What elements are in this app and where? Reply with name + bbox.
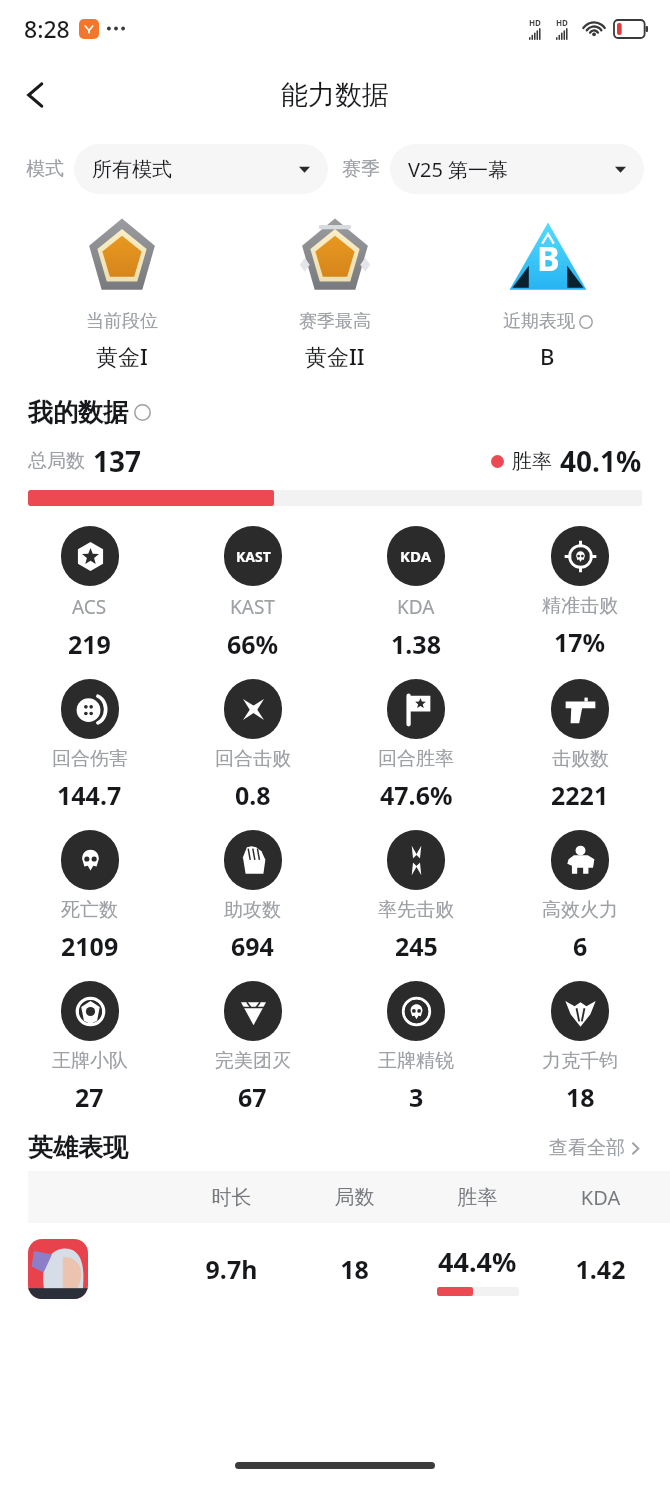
staticText: 助攻数 (224, 898, 281, 922)
staticText: 能力数据 (281, 78, 389, 112)
staticText: 王牌精锐 (378, 1049, 454, 1073)
staticText: 694 (231, 929, 274, 963)
staticText: HD (529, 17, 541, 28)
staticText: 8:28 (24, 13, 70, 44)
button[interactable]: 查看全部 (549, 1136, 642, 1160)
staticText: 44.4% (438, 1243, 517, 1280)
button[interactable]: 回合伤害 (8, 679, 171, 812)
staticText: 力克千钧 (542, 1049, 618, 1073)
button[interactable]: KAST (171, 526, 334, 661)
staticText: 黄金I (96, 341, 148, 371)
staticText: 击败数 (552, 747, 609, 771)
button[interactable]: 完美团灭 (171, 981, 334, 1114)
button[interactable]: 死亡数 (8, 830, 171, 963)
staticText: ACS (72, 594, 107, 620)
button[interactable]: 回合胜率 (334, 679, 498, 812)
staticText: 总局数 (28, 449, 85, 473)
button[interactable]: 当前段位 (16, 210, 228, 371)
button[interactable]: 回合击败 (171, 679, 334, 812)
staticText: 黄金II (305, 341, 365, 371)
staticText: 完美团灭 (215, 1049, 291, 1073)
staticText: 67 (238, 1080, 267, 1114)
button[interactable]: Back (8, 67, 64, 123)
staticText: 9.7h (170, 1252, 293, 1286)
staticText: 胜率 (512, 449, 552, 474)
button[interactable]: 王牌精锐 (334, 981, 498, 1114)
staticText: 当前段位 (86, 310, 158, 333)
staticText: HD (556, 17, 568, 28)
staticText: 245 (395, 929, 438, 963)
staticText: 40.1% (560, 442, 642, 480)
staticText: 所有模式 (92, 157, 172, 182)
staticText: 王牌小队 (52, 1049, 128, 1073)
button[interactable]: 王牌小队 (8, 981, 171, 1114)
staticText: 1.42 (539, 1252, 662, 1286)
staticText: 219 (68, 627, 111, 661)
staticText: 回合击败 (215, 747, 291, 771)
staticText: 率先击败 (378, 898, 454, 922)
staticText: 17% (554, 625, 606, 659)
button[interactable]: 高效火力 (498, 830, 662, 963)
button[interactable]: 率先击败 (334, 830, 498, 963)
staticText: 查看全部 (549, 1136, 625, 1160)
button[interactable]: 赛季最高 (228, 210, 441, 371)
staticText: 144.7 (57, 778, 122, 812)
button[interactable]: 力克千钧 (498, 981, 662, 1114)
staticText: KAST (230, 594, 275, 620)
staticText: KDA (400, 546, 432, 566)
staticText: KDA (397, 594, 435, 620)
staticText: 3 (409, 1080, 424, 1114)
staticText: KDA (539, 1184, 662, 1211)
staticText: 18 (293, 1252, 416, 1286)
button[interactable]: 助攻数 (171, 830, 334, 963)
staticText: 时长 (170, 1185, 293, 1210)
staticText: 回合伤害 (52, 747, 128, 771)
button[interactable]: B (441, 210, 654, 371)
staticText: 47.6% (380, 778, 453, 812)
button[interactable]: V25 第一幕 (390, 144, 644, 194)
button[interactable]: 所有模式 (74, 144, 328, 194)
staticText: B (540, 341, 555, 371)
staticText: 137 (93, 442, 142, 480)
staticText: 27 (75, 1080, 104, 1114)
staticText: 近期表现 (503, 310, 575, 333)
staticText: 1.38 (391, 627, 441, 661)
staticText: 2109 (61, 929, 119, 963)
staticText: 赛季最高 (299, 310, 371, 333)
button[interactable]: KDA (334, 526, 498, 661)
staticText: 0.8 (235, 778, 271, 812)
staticText: B (537, 235, 560, 281)
staticText: 高效火力 (542, 898, 618, 922)
button[interactable]: 9.7h (28, 1223, 670, 1315)
button[interactable]: ACS (8, 526, 171, 661)
button[interactable]: 我的数据 (28, 397, 642, 428)
staticText: 66% (227, 627, 279, 661)
staticText: 赛季 (342, 157, 380, 181)
staticText: 18 (566, 1080, 595, 1114)
staticText: V25 第一幕 (408, 156, 509, 183)
staticText: 死亡数 (61, 898, 118, 922)
staticText: 2221 (551, 778, 609, 812)
staticText: 回合胜率 (378, 747, 454, 771)
button[interactable]: 精准击败 (498, 526, 662, 659)
staticText: 6 (573, 929, 588, 963)
staticText: 局数 (293, 1185, 416, 1210)
staticText: 精准击败 (542, 594, 618, 618)
button[interactable]: 击败数 (498, 679, 662, 812)
staticText: KAST (236, 547, 271, 566)
staticText: 胜率 (416, 1185, 539, 1210)
staticText: 英雄表现 (28, 1132, 128, 1163)
staticText: 模式 (26, 157, 64, 181)
staticText: 我的数据 (28, 397, 128, 428)
